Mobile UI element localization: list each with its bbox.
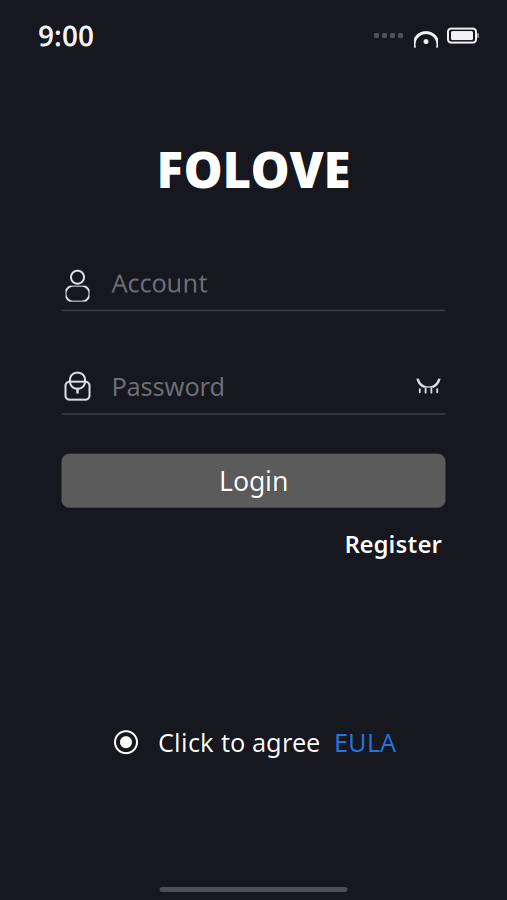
button[interactable]: Login — [61, 454, 445, 508]
button[interactable]: Register — [340, 522, 445, 566]
staticText: EULA — [334, 725, 396, 759]
staticText: 9:00 — [38, 17, 94, 54]
staticText: Register — [344, 528, 441, 560]
button[interactable]: Show password — [411, 371, 445, 401]
button[interactable]: Agree — [111, 727, 141, 757]
staticText: Account — [111, 266, 207, 299]
staticText: FOLOVE — [156, 136, 350, 202]
staticText: Password — [111, 369, 225, 403]
button[interactable]: EULA — [334, 725, 396, 759]
staticText: Login — [219, 463, 288, 498]
staticText: Click to agree — [158, 725, 320, 759]
